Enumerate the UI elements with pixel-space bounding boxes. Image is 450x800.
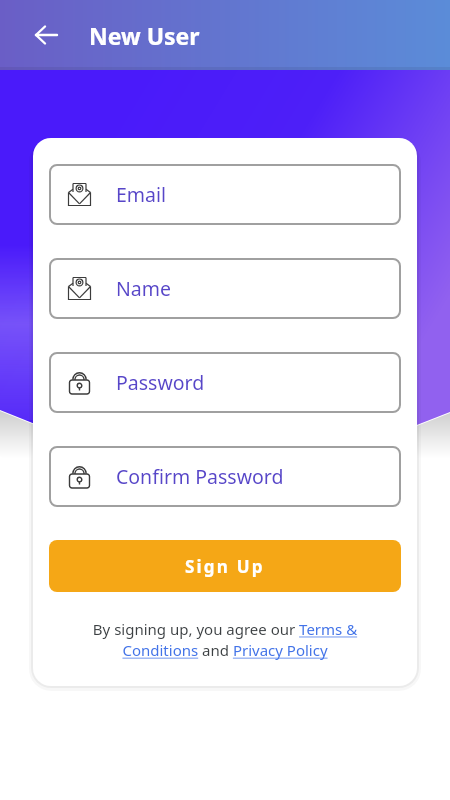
staticText: Name (116, 275, 171, 302)
staticText: Confirm Password (116, 463, 284, 490)
button[interactable]: Email (49, 164, 401, 225)
staticText: New User (89, 20, 200, 51)
staticText: Email (116, 181, 167, 208)
button[interactable]: By signing up, you agree our Terms & Con… (49, 619, 401, 661)
button[interactable]: Name (49, 258, 401, 319)
staticText: Password (116, 369, 205, 396)
staticText: Sign Up (185, 555, 265, 578)
button[interactable]: Confirm Password (49, 446, 401, 507)
button[interactable] (0, 0, 76, 70)
button[interactable]: Sign Up (49, 540, 401, 592)
button[interactable]: Password (49, 352, 401, 413)
